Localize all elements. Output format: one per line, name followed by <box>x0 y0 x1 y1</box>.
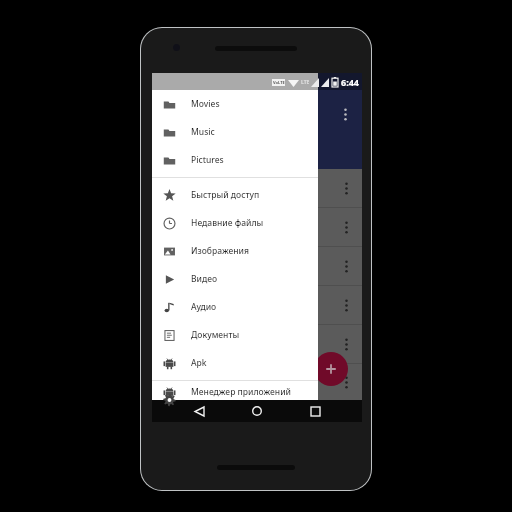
staticText: 6:44 <box>341 76 359 88</box>
button[interactable]: Менеджер приложений <box>152 384 318 400</box>
staticText: Недавние файлы <box>191 217 264 229</box>
button[interactable] <box>152 169 362 207</box>
button[interactable]: Home <box>246 400 268 422</box>
staticText: Pictures <box>191 154 224 166</box>
staticText: Apk <box>191 357 207 369</box>
staticText: Изображения <box>191 245 249 257</box>
button[interactable]: Изображения <box>152 237 318 265</box>
button[interactable]: Movies <box>152 90 318 118</box>
staticText: VoLTE <box>273 80 285 85</box>
button[interactable] <box>152 286 362 324</box>
staticText: Movies <box>191 98 220 110</box>
button[interactable] <box>152 364 362 400</box>
button[interactable]: More options <box>336 101 354 127</box>
button[interactable]: Аудио <box>152 293 318 321</box>
staticText: Документы <box>191 329 240 341</box>
button[interactable]: Pictures <box>152 146 318 174</box>
button[interactable] <box>152 208 362 246</box>
button[interactable]: Back <box>188 400 210 422</box>
button[interactable]: Music <box>152 118 318 146</box>
button[interactable]: Apk <box>152 349 318 377</box>
staticText: Менеджер приложений <box>191 386 291 398</box>
button[interactable]: Recent apps <box>304 400 326 422</box>
staticText: Аудио <box>191 301 217 313</box>
staticText: LTE <box>301 79 310 86</box>
staticText: Видео <box>191 273 218 285</box>
button[interactable]: Add <box>314 352 348 386</box>
button[interactable] <box>152 247 362 285</box>
button[interactable]: Недавние файлы <box>152 209 318 237</box>
button[interactable]: Видео <box>152 265 318 293</box>
staticText: Быстрый доступ <box>191 189 260 201</box>
button[interactable]: Быстрый доступ <box>152 181 318 209</box>
staticText: Music <box>191 126 215 138</box>
button[interactable] <box>152 325 362 363</box>
button[interactable]: Документы <box>152 321 318 349</box>
